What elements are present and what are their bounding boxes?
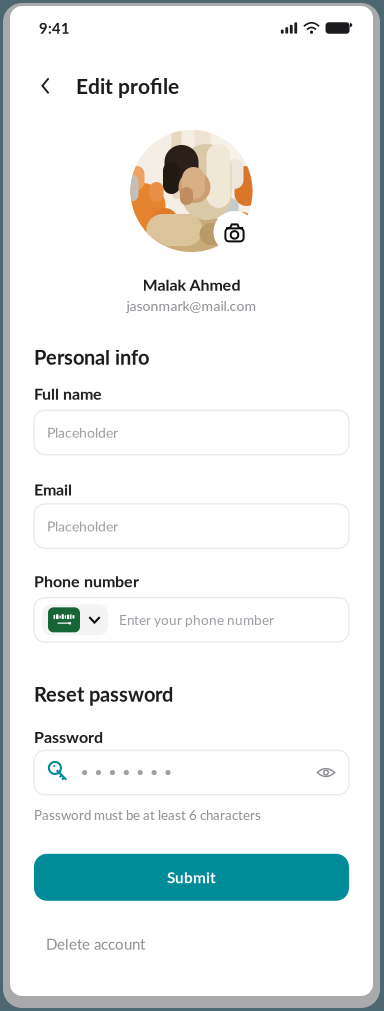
staticText: Delete account <box>46 935 145 953</box>
staticText: Phone number <box>34 571 139 591</box>
button[interactable]: Show password <box>309 756 343 790</box>
staticText: Password must be at least 6 characters <box>34 807 261 823</box>
staticText: Password <box>34 727 103 746</box>
staticText: Submit <box>167 868 216 886</box>
button[interactable]: Submit <box>34 854 349 901</box>
button[interactable]: Select country code <box>42 604 108 635</box>
staticText: Reset password <box>34 682 173 706</box>
staticText: jasonmark@mail.com <box>126 297 256 314</box>
staticText: Edit profile <box>76 73 179 98</box>
button[interactable]: Change profile photo <box>213 211 255 253</box>
staticText: 9:41 <box>39 19 70 37</box>
staticText: Placeholder <box>47 518 118 535</box>
staticText: Full name <box>34 384 102 403</box>
staticText: Placeholder <box>47 424 118 441</box>
staticText: Enter your phone number <box>119 612 274 628</box>
staticText: Email <box>34 480 72 499</box>
staticText: Malak Ahmed <box>142 275 240 294</box>
button[interactable]: Back <box>41 70 71 102</box>
staticText: Personal info <box>34 345 149 369</box>
button[interactable]: Delete account <box>34 929 349 959</box>
